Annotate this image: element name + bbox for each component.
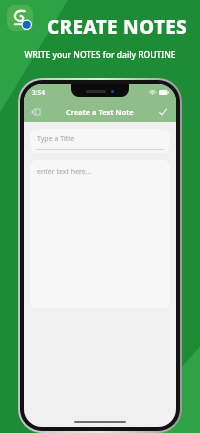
staticText: 3:54 bbox=[32, 88, 45, 97]
staticText: Create a Text Note bbox=[66, 107, 134, 117]
staticText: Type a Title bbox=[37, 134, 75, 144]
button[interactable]: Type a Title bbox=[30, 129, 170, 153]
button[interactable]: Notes app icon bbox=[7, 5, 33, 31]
button[interactable]: Save note bbox=[156, 105, 170, 119]
staticText: enter text here... bbox=[37, 167, 92, 177]
button[interactable]: enter text here... bbox=[30, 160, 170, 308]
button[interactable]: Back bbox=[28, 104, 44, 120]
staticText: CREATE NOTES bbox=[34, 14, 200, 40]
staticText: WRITE your NOTES for daily ROUTINE bbox=[0, 49, 200, 61]
